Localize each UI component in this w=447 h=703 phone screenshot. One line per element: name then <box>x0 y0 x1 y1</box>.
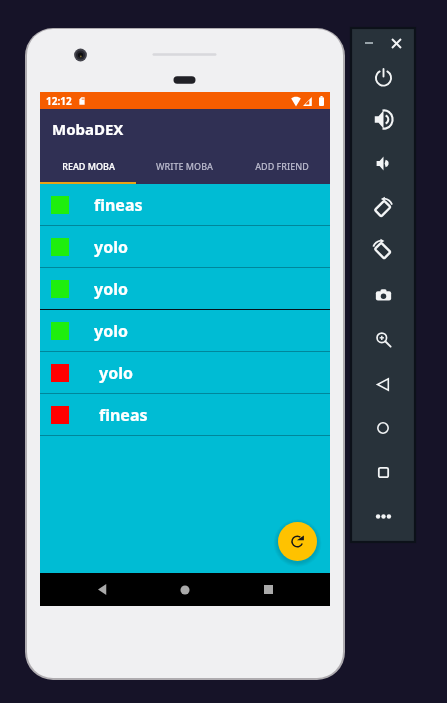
button[interactable]: Home <box>165 573 205 606</box>
button[interactable]: Zoom <box>368 324 398 354</box>
staticText: fineas <box>94 194 143 216</box>
button[interactable]: Volume down <box>368 148 398 178</box>
staticText: yolo <box>99 362 133 384</box>
button[interactable]: yolo <box>40 268 330 310</box>
staticText: ADD FRIEND <box>255 160 309 172</box>
button[interactable]: Back <box>83 573 123 606</box>
staticText: yolo <box>94 236 128 258</box>
button[interactable]: fineas <box>40 394 330 436</box>
button[interactable]: WRITE MOBA <box>136 148 233 184</box>
button[interactable]: Close <box>386 33 406 53</box>
staticText: yolo <box>94 278 128 300</box>
button[interactable]: Rotate left <box>368 191 398 221</box>
button[interactable]: More <box>368 501 398 531</box>
staticText: 12:12 <box>46 94 72 108</box>
staticText: READ MOBA <box>62 160 115 172</box>
button[interactable]: fineas <box>40 184 330 226</box>
button[interactable]: READ MOBA <box>40 148 136 184</box>
button[interactable]: Overview <box>368 457 398 487</box>
staticText: WRITE MOBA <box>156 160 213 172</box>
staticText: MobaDEX <box>52 119 124 139</box>
button[interactable]: yolo <box>40 310 330 352</box>
button[interactable]: Refresh <box>278 522 317 561</box>
button[interactable]: Recents <box>248 573 288 606</box>
button[interactable]: Rotate right <box>368 233 398 263</box>
button[interactable]: ADD FRIEND <box>233 148 330 184</box>
button[interactable]: Minimize <box>359 33 379 53</box>
button[interactable]: yolo <box>40 352 330 394</box>
button[interactable]: Back <box>368 369 398 399</box>
button[interactable]: Take screenshot <box>368 280 398 310</box>
button[interactable]: Home <box>368 413 398 443</box>
button[interactable]: Power <box>368 61 398 91</box>
staticText: fineas <box>99 404 148 426</box>
staticText: yolo <box>94 320 128 342</box>
button[interactable]: Volume up <box>368 104 398 134</box>
button[interactable]: yolo <box>40 226 330 268</box>
